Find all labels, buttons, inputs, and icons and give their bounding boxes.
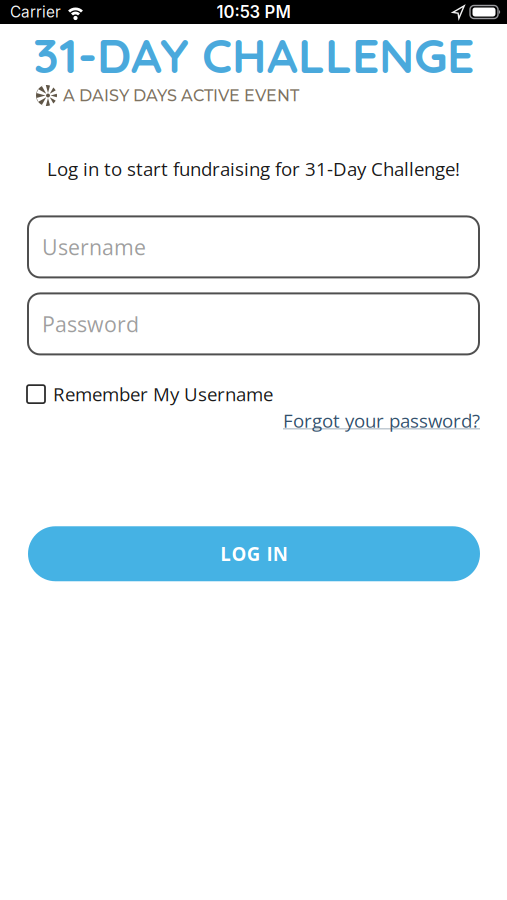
staticText: 10:53 PM	[216, 2, 290, 22]
staticText: 31-DAY CHALLENGE	[33, 25, 474, 85]
staticText: LOG IN	[220, 541, 288, 566]
staticText: Username	[42, 232, 146, 261]
button[interactable]: Username	[28, 216, 479, 277]
staticText: Forgot your password?	[283, 408, 480, 433]
staticText: Carrier	[10, 3, 61, 21]
staticText: Password	[42, 309, 139, 338]
button[interactable]: Forgot your password?	[0, 408, 507, 433]
staticText: Remember My Username	[53, 381, 273, 407]
button[interactable]: Password	[28, 293, 479, 354]
button[interactable]: LOG IN	[28, 526, 480, 581]
staticText: A DAISY DAYS ACTIVE EVENT	[63, 86, 299, 105]
button[interactable]: Remember My Username	[0, 381, 507, 407]
staticText: Log in to start fundraising for 31-Day C…	[47, 156, 460, 181]
